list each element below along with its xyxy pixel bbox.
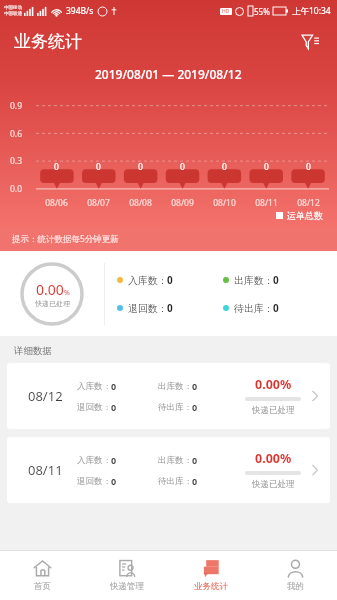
- staticText: 出库数: [234, 274, 264, 287]
- staticText: 首页: [34, 581, 51, 592]
- staticText: ：: [184, 402, 192, 412]
- staticText: 0.6: [10, 128, 23, 140]
- staticText: 08/12: [297, 197, 320, 209]
- staticText: 0: [111, 401, 117, 413]
- staticText: 详细数据: [14, 345, 52, 357]
- staticText: 55%: [254, 6, 270, 17]
- staticText: 入库数: [77, 455, 103, 466]
- staticText: 0.00: [36, 280, 64, 299]
- staticText: 快递已处理: [35, 299, 70, 308]
- staticText: ：: [158, 275, 167, 286]
- staticText: 快递管理: [110, 581, 144, 592]
- staticText: 中国联通: [4, 11, 22, 17]
- staticText: 0: [306, 161, 311, 173]
- staticText: 08/11: [28, 461, 63, 479]
- staticText: 我的: [287, 581, 304, 592]
- staticText: 0.3: [10, 155, 23, 167]
- staticText: 0: [192, 475, 198, 487]
- staticText: 退回数: [77, 476, 103, 487]
- staticText: ：: [184, 381, 192, 391]
- button[interactable]: 08/11: [7, 437, 330, 503]
- staticText: ：: [264, 303, 273, 314]
- staticText: 08/12: [28, 387, 63, 405]
- staticText: 上午10:34: [292, 5, 331, 17]
- button[interactable]: 08/12: [7, 363, 330, 429]
- staticText: 0: [167, 301, 173, 315]
- staticText: 0: [192, 380, 198, 392]
- staticText: 0: [138, 161, 143, 173]
- staticText: 08/10: [213, 197, 236, 209]
- staticText: ：: [158, 303, 167, 314]
- staticText: 0: [222, 161, 227, 173]
- staticText: 0.9: [10, 100, 23, 112]
- staticText: ：: [103, 476, 111, 486]
- button[interactable]: 筛选: [297, 28, 323, 54]
- staticText: 待出库: [158, 402, 184, 413]
- staticText: 2019/08/01 — 2019/08/12: [95, 66, 242, 82]
- staticText: 0: [111, 454, 117, 466]
- staticText: 退回数: [77, 402, 103, 413]
- staticText: 0.0: [10, 183, 23, 195]
- staticText: 待出库: [158, 476, 184, 487]
- staticText: 0: [111, 380, 117, 392]
- staticText: 08/11: [255, 197, 278, 209]
- staticText: 0: [167, 273, 173, 287]
- staticText: 业务统计: [194, 581, 228, 592]
- staticText: HD: [222, 8, 230, 15]
- staticText: ：: [103, 381, 111, 391]
- staticText: 0: [273, 273, 279, 287]
- button[interactable]: 业务统计: [169, 551, 253, 600]
- staticText: 0.00%: [255, 376, 292, 393]
- staticText: 0: [54, 161, 59, 173]
- staticText: 运单总数: [287, 210, 323, 221]
- staticText: 入库数: [77, 381, 103, 392]
- button[interactable]: 首页: [0, 551, 85, 600]
- staticText: 08/07: [87, 197, 110, 209]
- staticText: 0: [192, 401, 198, 413]
- staticText: 入库数: [128, 274, 158, 287]
- staticText: 出库数: [158, 381, 184, 392]
- staticText: 394B/s: [66, 5, 94, 17]
- staticText: ：: [103, 455, 111, 465]
- staticText: 中国移动: [4, 5, 22, 11]
- staticText: 0: [111, 475, 117, 487]
- staticText: %: [64, 288, 70, 298]
- staticText: 0.00%: [255, 450, 292, 467]
- button[interactable]: 我的: [253, 551, 337, 600]
- staticText: 0: [192, 454, 198, 466]
- staticText: 08/09: [171, 197, 194, 209]
- staticText: 退回数: [128, 302, 158, 315]
- staticText: 快递已处理: [252, 479, 295, 490]
- staticText: 08/08: [129, 197, 152, 209]
- staticText: 业务统计: [14, 31, 82, 52]
- button[interactable]: 快递管理: [85, 551, 169, 600]
- staticText: ：: [103, 402, 111, 412]
- staticText: 快递已处理: [252, 405, 295, 416]
- staticText: 提示：统计数据每5分钟更新: [12, 233, 119, 245]
- staticText: 待出库: [234, 302, 264, 315]
- staticText: 0: [273, 301, 279, 315]
- staticText: 0: [180, 161, 185, 173]
- staticText: ：: [184, 476, 192, 486]
- staticText: 0: [264, 161, 269, 173]
- staticText: ：: [264, 275, 273, 286]
- staticText: 0: [96, 161, 101, 173]
- staticText: 08/06: [45, 197, 68, 209]
- staticText: 出库数: [158, 455, 184, 466]
- staticText: ：: [184, 455, 192, 465]
